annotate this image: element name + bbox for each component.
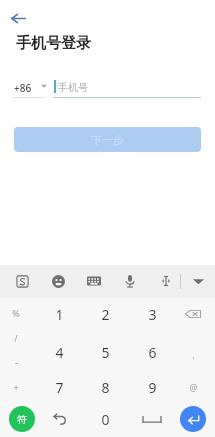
button[interactable]: Country code (36, 78, 52, 94)
staticText: 0 (101, 410, 110, 429)
staticText: 3 (148, 305, 157, 324)
staticText: / (14, 332, 18, 344)
button[interactable]: Move cursor (146, 268, 186, 294)
button[interactable]: 8 (85, 374, 125, 400)
staticText: % (12, 307, 20, 319)
staticText: 符 (17, 413, 27, 426)
button[interactable]: 1 (39, 301, 79, 327)
button[interactable]: % (0, 300, 36, 326)
button[interactable]: 3 (132, 301, 172, 327)
staticText: 手机号登录 (16, 34, 91, 53)
button[interactable]: +86 (11, 78, 49, 98)
staticText: 1 (55, 305, 64, 324)
button[interactable]: 5 (85, 339, 125, 365)
staticText: 5 (101, 343, 110, 362)
button[interactable]: @ (173, 374, 213, 400)
button[interactable]: 0 (85, 406, 125, 432)
button[interactable]: 手机号 (53, 76, 201, 98)
button[interactable]: / (0, 325, 36, 351)
staticText: 7 (55, 378, 64, 397)
staticText: 下一步 (91, 133, 124, 147)
button[interactable]: 2 (85, 301, 125, 327)
button[interactable]: Undo (39, 406, 79, 432)
staticText: + (13, 381, 19, 393)
button[interactable]: 6 (132, 339, 172, 365)
button[interactable]: Space (132, 406, 172, 432)
button[interactable]: + (0, 374, 36, 400)
button[interactable]: Delete (173, 301, 213, 327)
staticText: 6 (148, 343, 157, 362)
button[interactable]: Symbols (9, 406, 35, 432)
staticText: 2 (101, 305, 110, 324)
button[interactable]: 9 (132, 374, 172, 400)
button[interactable]: 7 (39, 374, 79, 400)
button[interactable]: 4 (39, 339, 79, 365)
staticText: @ (189, 381, 198, 393)
staticText: +86 (14, 81, 32, 95)
staticText: 9 (148, 378, 157, 397)
button[interactable]: 下一步 (14, 127, 201, 152)
button[interactable]: Back (3, 3, 33, 33)
staticText: . (192, 347, 195, 362)
button[interactable]: Emoji (38, 268, 78, 294)
button[interactable]: Input method settings (2, 268, 42, 294)
button[interactable]: Hide keyboard (178, 268, 215, 294)
button[interactable]: Voice input (110, 268, 150, 294)
staticText: 8 (101, 378, 110, 397)
staticText: 4 (55, 343, 64, 362)
button[interactable]: Keyboard layout (74, 268, 114, 294)
staticText: - (15, 356, 18, 368)
button[interactable]: Enter (180, 406, 206, 432)
staticText: 手机号 (58, 81, 88, 94)
